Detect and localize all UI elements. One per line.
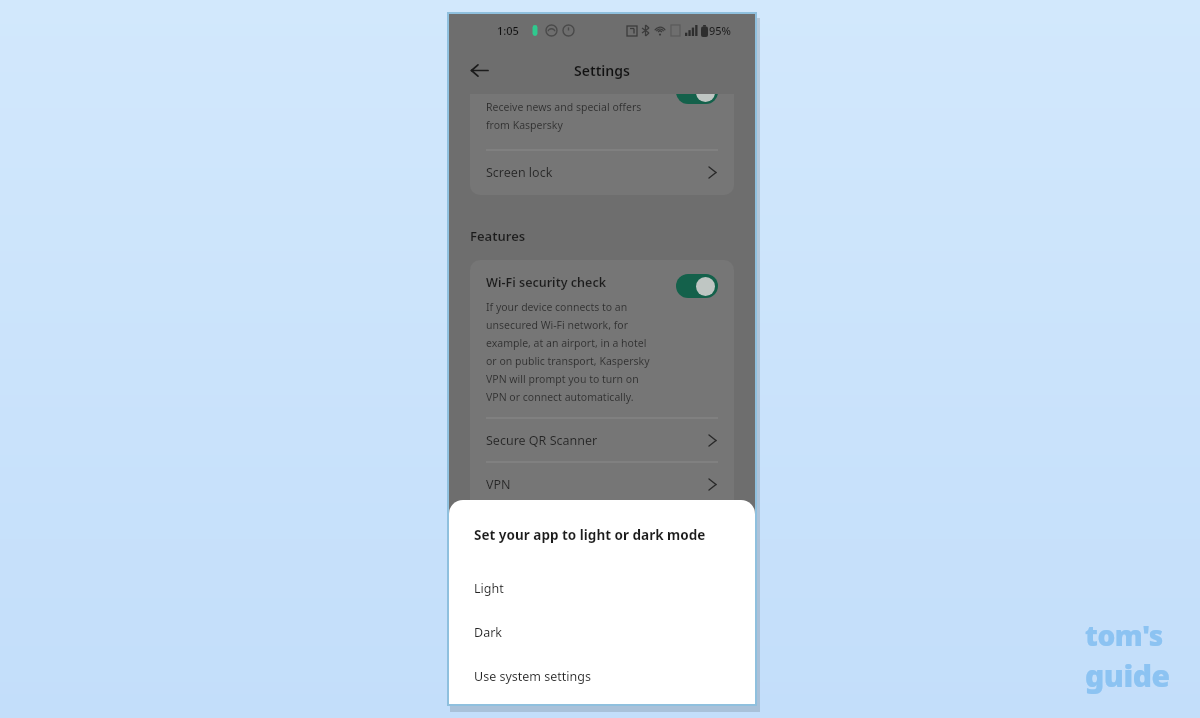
staticText: 95%: [709, 23, 731, 38]
button[interactable]: Toggle on: [676, 274, 718, 298]
staticText: VPN: [486, 476, 511, 493]
button[interactable]: Use system settings: [449, 654, 755, 698]
button[interactable]: VPN: [470, 462, 734, 506]
button[interactable]: Toggle on: [676, 94, 718, 104]
staticText: Additional: [470, 527, 536, 545]
button[interactable]: Screen lock: [470, 150, 734, 195]
staticText: Light: [474, 580, 504, 597]
staticText: example, at an airport, in a hotel: [486, 336, 647, 350]
staticText: guide: [1085, 655, 1170, 696]
staticText: Settings: [574, 61, 630, 80]
staticText: VPN or connect automatically.: [486, 390, 634, 404]
staticText: or on public transport, Kaspersky: [486, 354, 650, 368]
staticText: 1:05: [497, 23, 519, 38]
staticText: VPN will prompt you to turn on: [486, 372, 639, 386]
staticText: Receive news and special offers: [486, 100, 642, 114]
staticText: tom's: [1085, 616, 1163, 654]
staticText: Secure QR Scanner: [486, 432, 598, 449]
staticText: Set your app to light or dark mode: [474, 526, 706, 544]
staticText: unsecured Wi-Fi network, for: [486, 318, 629, 332]
staticText: Features: [470, 227, 526, 245]
staticText: from Kaspersky: [486, 118, 563, 132]
staticText: Screen lock: [486, 164, 553, 181]
staticText: If your device connects to an: [486, 300, 628, 314]
staticText: Wi-Fi security check: [486, 274, 607, 291]
staticText: Use system settings: [474, 668, 591, 685]
button[interactable]: Secure QR Scanner: [470, 418, 734, 462]
button[interactable]: Back: [461, 52, 497, 88]
staticText: Dark: [474, 624, 502, 641]
button[interactable]: Light: [449, 566, 755, 610]
button[interactable]: Dark: [449, 610, 755, 654]
